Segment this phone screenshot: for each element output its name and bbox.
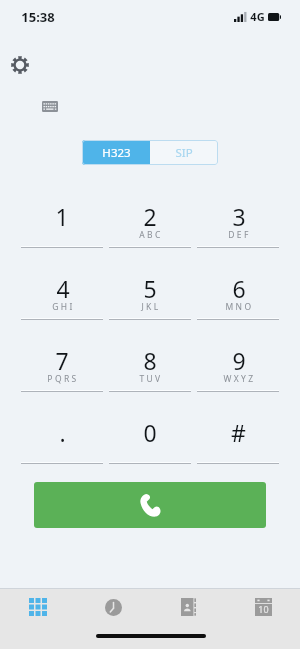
button[interactable]: 6	[194, 248, 282, 320]
staticText: 6	[232, 273, 246, 304]
button[interactable]: 0	[106, 392, 194, 464]
button[interactable]: 5	[106, 248, 194, 320]
button[interactable]: Calendar	[225, 589, 300, 649]
button[interactable]: 4	[18, 248, 106, 320]
staticText: #	[231, 417, 246, 448]
button[interactable]: H323	[82, 140, 150, 165]
button[interactable]: Dialpad	[0, 589, 75, 649]
staticText: GHI	[52, 301, 75, 313]
button[interactable]: 8	[106, 320, 194, 392]
button[interactable]: #	[194, 392, 282, 464]
button[interactable]: Call	[34, 482, 266, 528]
button[interactable]: Recents	[75, 589, 150, 649]
staticText: 4G	[250, 9, 265, 24]
button[interactable]: Keyboard	[39, 98, 60, 114]
button[interactable]: 9	[194, 320, 282, 392]
button[interactable]: Contacts	[150, 589, 225, 649]
staticText: 15:38	[21, 8, 55, 26]
button[interactable]: 3	[194, 176, 282, 248]
staticText: H323	[102, 145, 131, 161]
staticText: SIP	[175, 145, 193, 161]
staticText: .	[59, 417, 66, 448]
button[interactable]: SIP	[150, 140, 218, 165]
button[interactable]: .	[18, 392, 106, 464]
staticText: DEF	[228, 229, 251, 241]
staticText: 9	[232, 345, 246, 376]
staticText: 1	[55, 201, 69, 232]
staticText: 8	[143, 345, 157, 376]
button[interactable]: Settings	[8, 53, 31, 76]
staticText: 3	[232, 201, 246, 232]
staticText: 5	[143, 273, 157, 304]
button[interactable]: 7	[18, 320, 106, 392]
staticText: TUV	[139, 373, 163, 385]
staticText: 10	[258, 603, 269, 615]
staticText: 0	[143, 417, 157, 448]
staticText: JKL	[141, 301, 161, 313]
staticText: 2	[143, 201, 157, 232]
button[interactable]: 1	[18, 176, 106, 248]
staticText: 4	[56, 273, 70, 304]
staticText: PQRS	[47, 373, 79, 385]
staticText: MNO	[225, 301, 254, 313]
staticText: 7	[55, 345, 69, 376]
staticText: WXYZ	[223, 373, 256, 385]
staticText: ABC	[139, 229, 163, 241]
button[interactable]: 2	[106, 176, 194, 248]
